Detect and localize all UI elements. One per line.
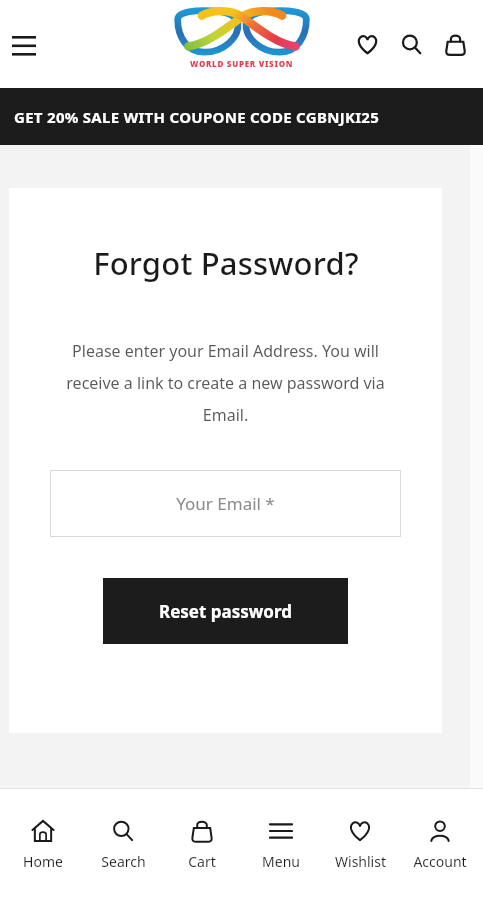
staticText: Forgot Password? xyxy=(93,242,359,284)
staticText: Wishlist xyxy=(335,852,386,871)
staticText: Your Email * xyxy=(176,492,275,515)
button[interactable]: Wishlist xyxy=(324,813,396,877)
button[interactable]: Menu xyxy=(2,22,46,66)
staticText: GET 20% SALE WITH COUPONE CODE CGBNJKI25 xyxy=(14,107,380,127)
staticText: Home xyxy=(23,852,63,871)
button[interactable]: Search xyxy=(87,813,159,877)
button[interactable]: World Super Vision home xyxy=(174,9,310,77)
button[interactable]: Search xyxy=(389,22,433,66)
button[interactable]: Your Email * xyxy=(50,470,401,537)
button[interactable]: Wishlist xyxy=(345,22,389,66)
staticText: Search xyxy=(101,852,146,871)
staticText: Cart xyxy=(188,852,216,871)
staticText: Reset password xyxy=(159,600,292,623)
staticText: Menu xyxy=(262,852,300,871)
button[interactable]: Cart xyxy=(166,813,238,877)
staticText: WORLD SUPER VISION xyxy=(190,58,294,69)
button[interactable]: Cart xyxy=(433,22,477,66)
button[interactable]: Account xyxy=(404,813,476,877)
staticText: Account xyxy=(413,852,467,871)
button[interactable]: GET 20% SALE WITH COUPONE CODE CGBNJKI25 xyxy=(0,88,483,145)
staticText: Please enter your Email Address. You wil… xyxy=(47,340,404,426)
button[interactable]: Menu xyxy=(245,813,317,877)
button[interactable]: Reset password xyxy=(103,578,348,644)
button[interactable]: Home xyxy=(7,813,79,877)
